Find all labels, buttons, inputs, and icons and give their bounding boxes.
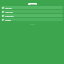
staticText: Settings: [5, 19, 11, 21]
button[interactable]: Settings: [1, 18, 63, 21]
button[interactable]: Heart rate: [1, 10, 63, 13]
staticText: Start run: [5, 7, 12, 9]
button[interactable]: Fitness: [28, 3, 37, 5]
button[interactable]: Start run: [1, 6, 63, 9]
staticText: Steps today: [5, 15, 14, 17]
staticText: Fitness: [30, 3, 36, 5]
staticText: Heart rate: [5, 11, 13, 13]
button[interactable]: Steps today: [1, 14, 63, 17]
